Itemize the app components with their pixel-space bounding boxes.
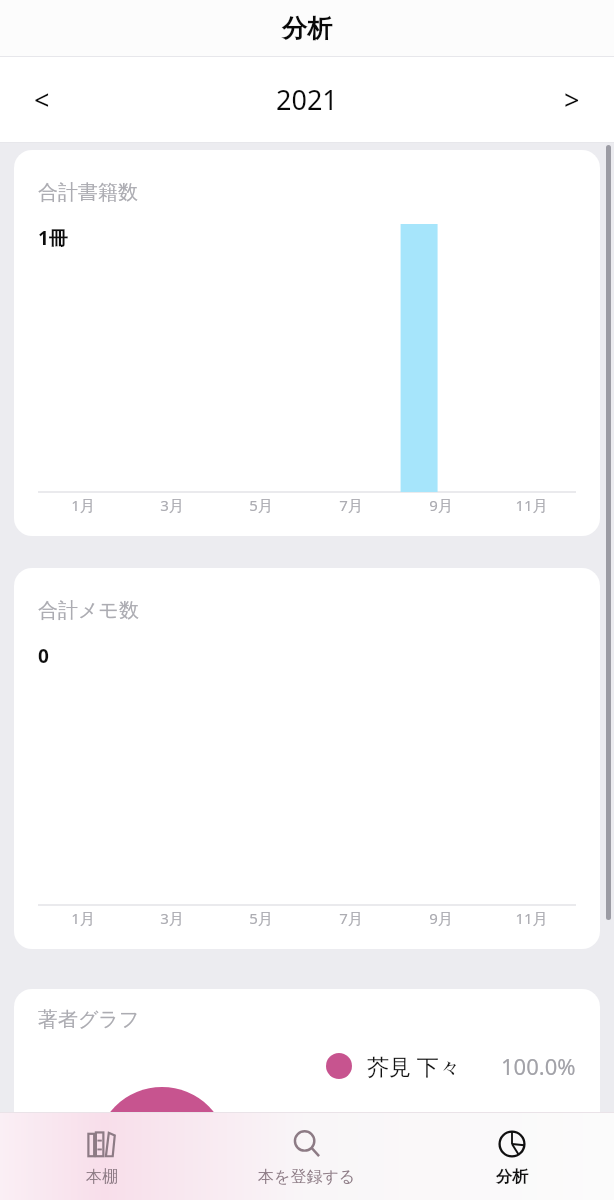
staticText: 5月: [249, 495, 273, 515]
staticText: <: [34, 81, 50, 118]
staticText: 3月: [160, 495, 184, 515]
button[interactable]: Analytics: [409, 1113, 614, 1200]
staticText: 0: [38, 643, 49, 669]
staticText: 5月: [249, 908, 273, 928]
staticText: 7月: [339, 495, 363, 515]
staticText: 9月: [429, 908, 453, 928]
staticText: 著者グラフ: [38, 1007, 140, 1032]
staticText: 1冊: [38, 225, 68, 251]
button[interactable]: Bookshelf: [0, 1113, 204, 1200]
staticText: 分析: [496, 1167, 528, 1187]
staticText: 7月: [339, 908, 363, 928]
staticText: 分析: [282, 13, 332, 44]
staticText: 1月: [71, 908, 95, 928]
button[interactable]: 芥見 下々: [38, 1051, 576, 1081]
staticText: 合計書籍数: [38, 180, 138, 205]
staticText: 2021: [276, 81, 338, 118]
staticText: 芥見 下々: [367, 1051, 461, 1081]
button[interactable]: Next year: [530, 57, 614, 142]
button[interactable]: Previous year: [0, 57, 84, 142]
button[interactable]: 合計書籍数: [14, 150, 600, 536]
staticText: 100.0%: [501, 1051, 576, 1081]
staticText: >: [564, 81, 580, 118]
staticText: 11月: [515, 908, 548, 928]
staticText: 本棚: [86, 1167, 118, 1187]
staticText: 1月: [71, 495, 95, 515]
button[interactable]: 著者グラフ: [14, 989, 600, 1200]
staticText: 合計メモ数: [38, 598, 139, 623]
button[interactable]: 合計メモ数: [14, 568, 600, 949]
staticText: 9月: [429, 495, 453, 515]
staticText: 3月: [160, 908, 184, 928]
staticText: 11月: [515, 495, 548, 515]
staticText: 本を登録する: [258, 1167, 356, 1187]
button[interactable]: Register book: [204, 1113, 409, 1200]
